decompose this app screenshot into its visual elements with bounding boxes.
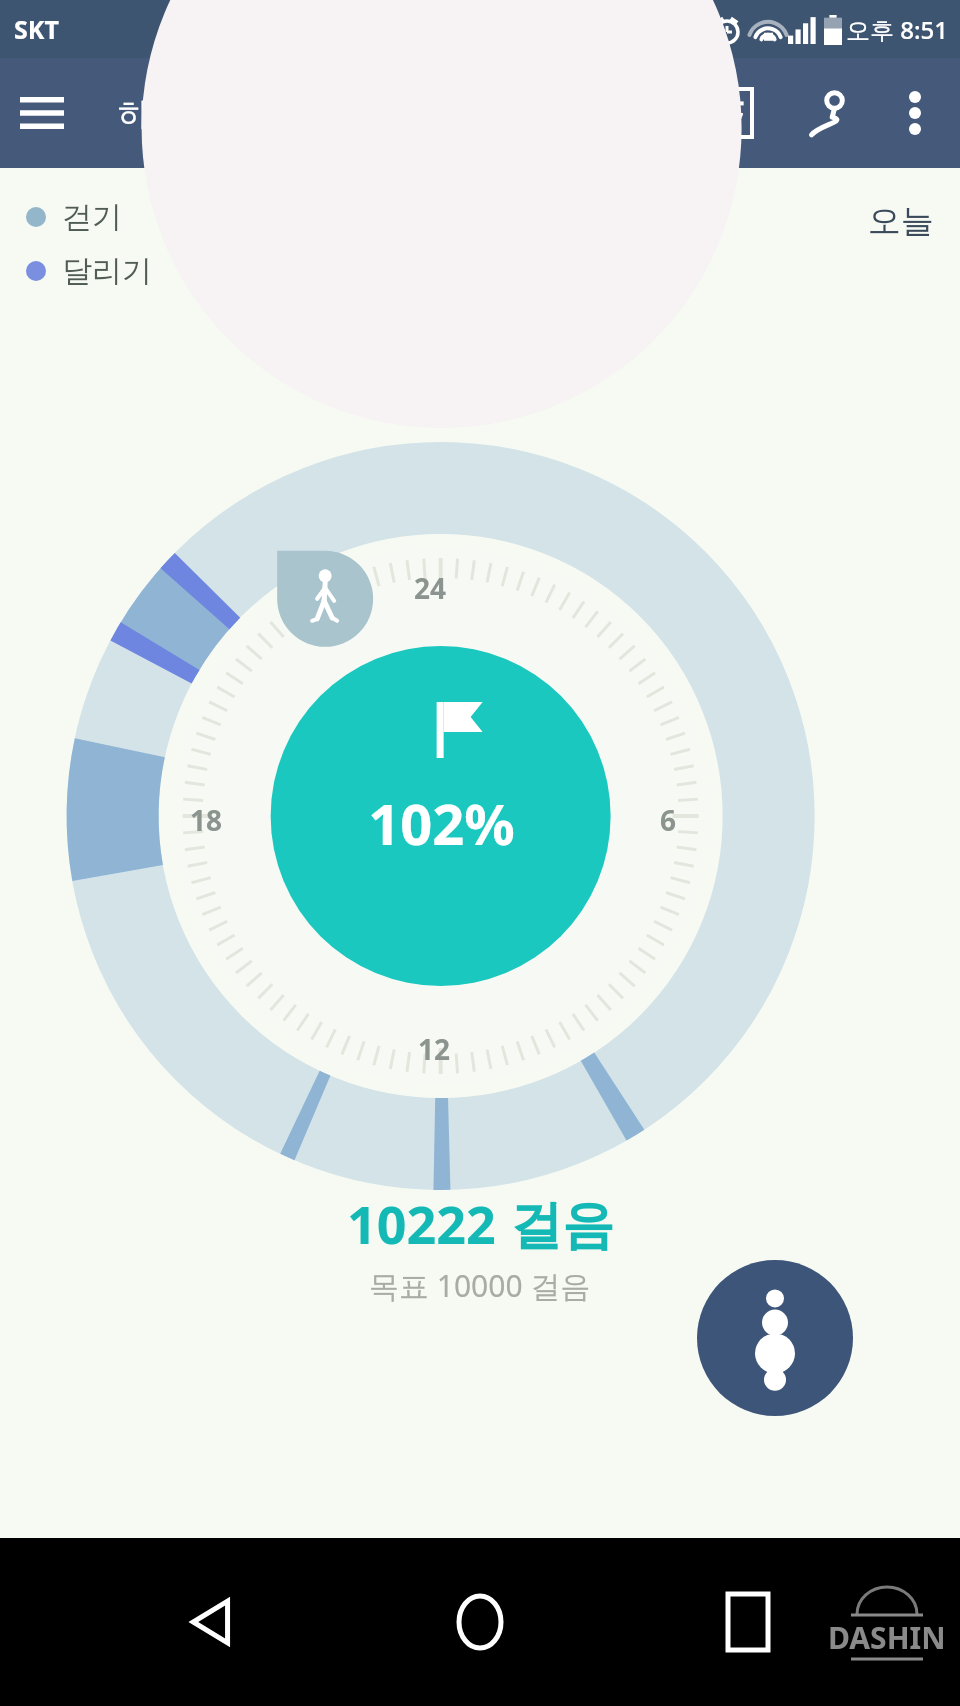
button[interactable]: More options [880, 78, 950, 148]
staticText: 하루 건강 노트 [118, 91, 327, 135]
button[interactable]: More actions [697, 1260, 853, 1416]
button[interactable]: Recents [693, 1567, 803, 1677]
staticText: 102% [368, 785, 515, 861]
button[interactable]: 102% [271, 636, 611, 976]
button[interactable]: Route [792, 76, 866, 150]
staticText: 6 [660, 801, 677, 839]
button[interactable]: Calendar [696, 76, 770, 150]
button[interactable]: 오늘 [868, 200, 934, 242]
staticText: SKT [14, 12, 59, 46]
staticText: DASHIN [828, 1617, 946, 1658]
staticText: 오후 8:51 [846, 13, 948, 46]
staticText: 달리기 [62, 252, 152, 290]
staticText: 10222 [347, 1188, 510, 1259]
staticText: 걷기 [62, 198, 122, 236]
staticText: 12 [418, 1030, 451, 1068]
staticText: 목표 10000 걸음 [369, 1265, 591, 1306]
staticText: 걸음 [510, 1193, 614, 1259]
button[interactable]: Home [425, 1567, 535, 1677]
staticText: 18 [190, 801, 223, 839]
staticText: 24 [414, 569, 447, 607]
button[interactable]: Back [158, 1567, 268, 1677]
staticText: 27 [722, 107, 744, 133]
button[interactable]: Menu [14, 85, 70, 141]
